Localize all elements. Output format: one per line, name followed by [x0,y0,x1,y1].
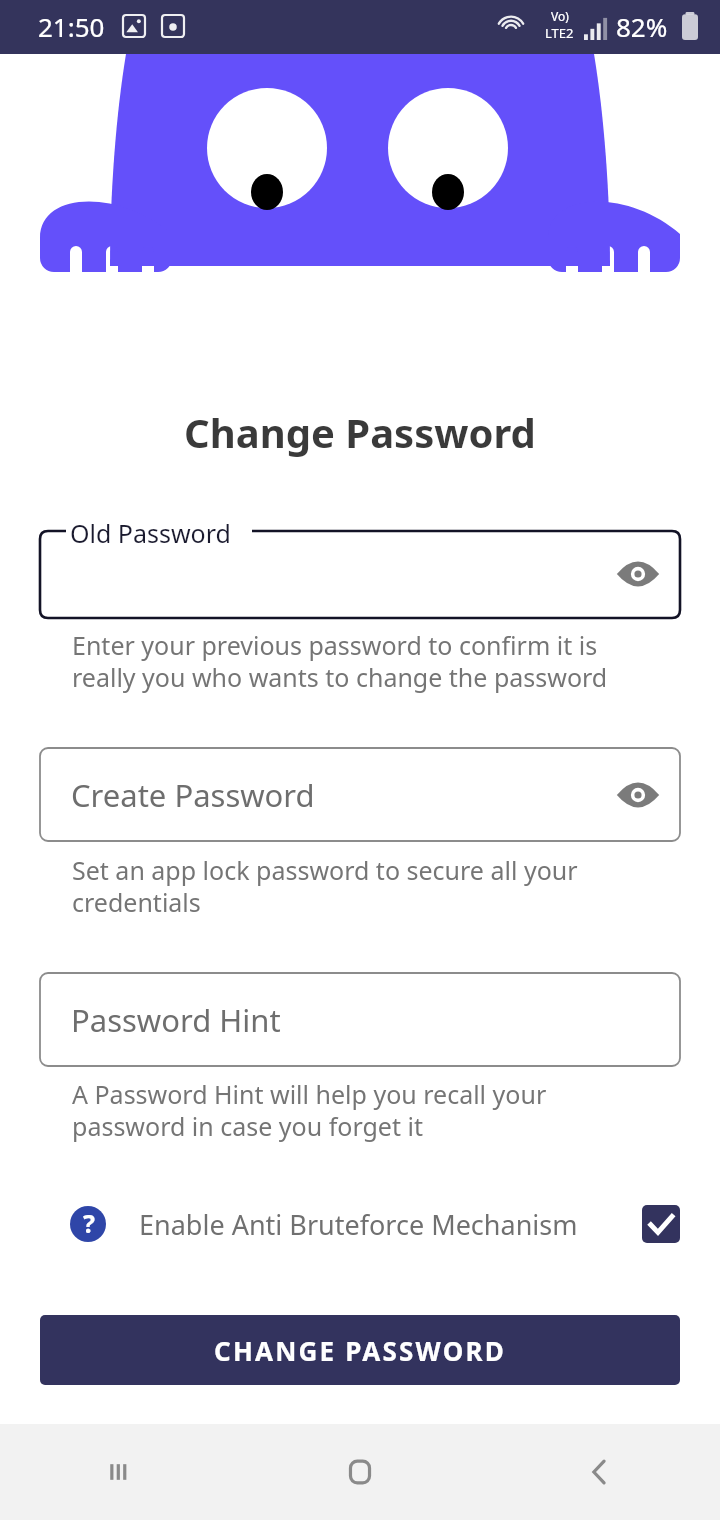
button[interactable]: CHANGE PASSWORD [40,1315,680,1385]
staticText: Password Hint [71,999,281,1041]
button[interactable]: Recent apps [0,1424,240,1520]
staticText: 21:50 [38,9,105,44]
staticText: Change Password [184,405,536,459]
staticText: Vo) [551,8,569,24]
staticText: 82% [616,9,668,44]
staticText: CHANGE PASSWORD [214,1333,506,1368]
staticText: LTE2 [545,24,574,42]
button[interactable]: ? [70,1195,680,1253]
staticText: Enable Anti Bruteforce Mechanism [139,1206,578,1243]
button[interactable]: Anti bruteforce enabled [642,1205,680,1243]
button[interactable]: Password Hint [40,973,680,1066]
button[interactable]: Back [480,1424,720,1520]
button[interactable]: Home [240,1424,480,1520]
staticText: Set an app lock password to secure all y… [72,853,578,919]
button[interactable]: Create Password [40,748,680,841]
button[interactable]: Old Password [40,518,680,618]
staticText: Enter your previous password to confirm … [72,628,608,694]
staticText: Create Password [71,774,315,816]
staticText: ? [83,1206,95,1240]
button[interactable]: Show new password [610,767,666,823]
staticText: A Password Hint will help you recall you… [72,1077,547,1143]
button[interactable]: Show old password [610,546,666,602]
staticText: Old Password [70,516,231,550]
